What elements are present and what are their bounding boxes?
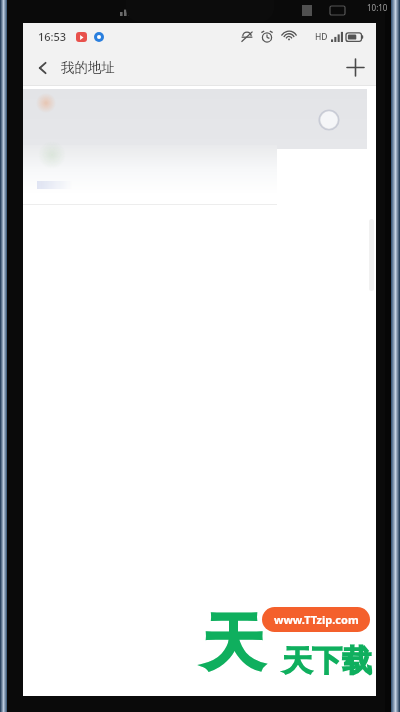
staticText: 天 [202, 604, 264, 682]
staticText: HD [315, 31, 328, 43]
staticText: 天下载 [282, 642, 372, 680]
other: Back [35, 60, 51, 76]
button[interactable]: Back [23, 50, 125, 85]
staticText: 我的地址 [61, 59, 115, 76]
staticText: 10:10 [367, 2, 388, 13]
button[interactable]: Add address [334, 50, 376, 85]
button[interactable]: Select address [318, 109, 340, 131]
staticText: www.TTzip.com [274, 612, 359, 627]
staticText: 16:53 [38, 29, 67, 44]
